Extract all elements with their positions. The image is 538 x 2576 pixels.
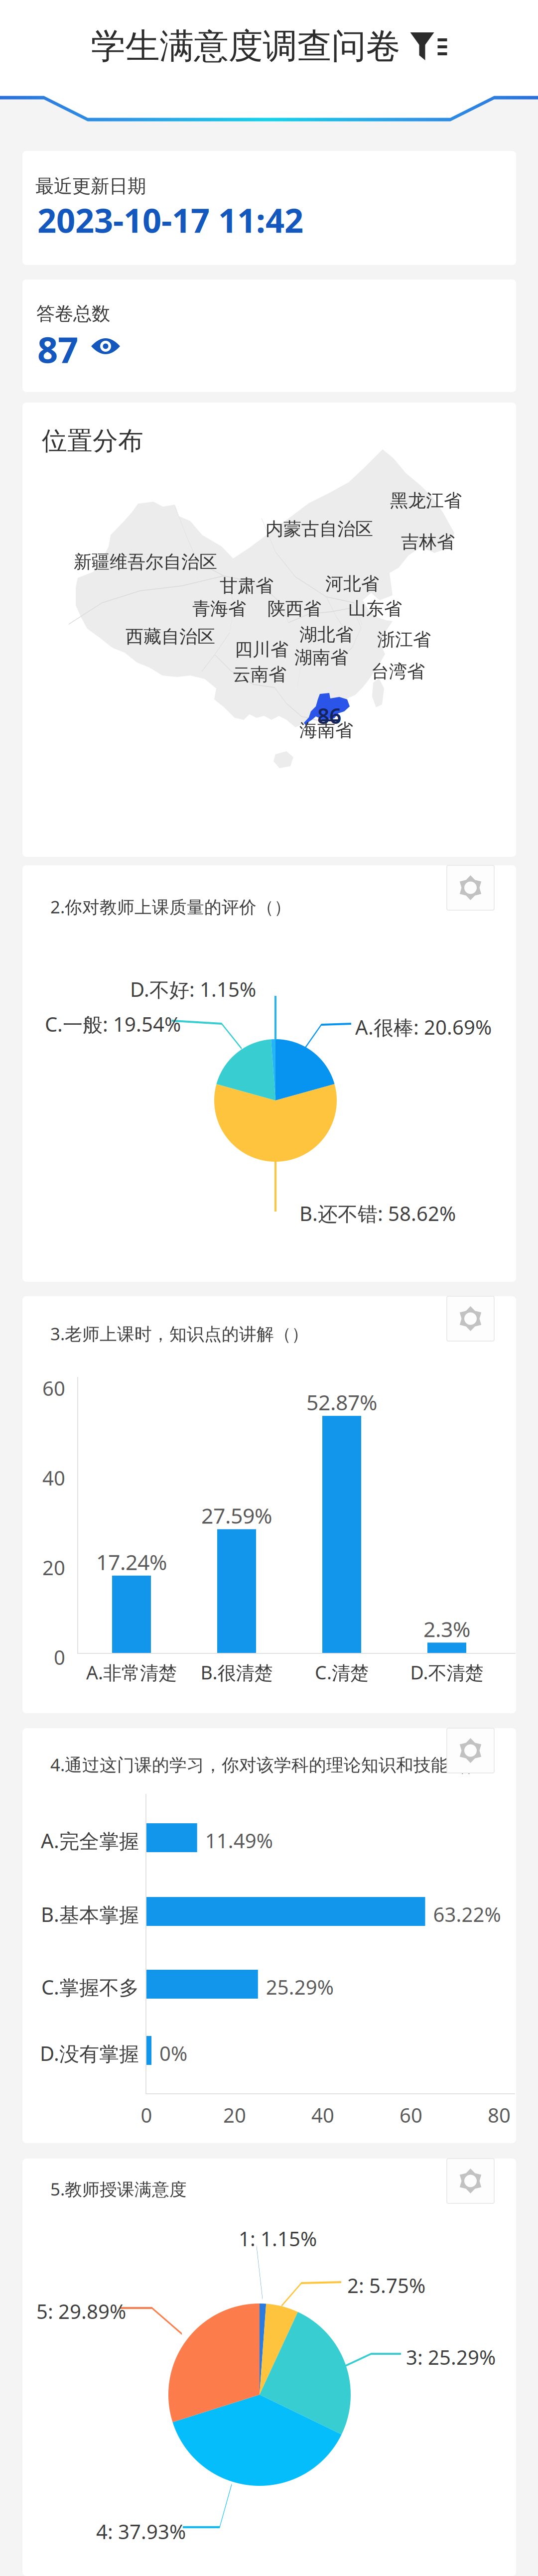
staticText: 0% bbox=[159, 2040, 187, 2066]
staticText: C.一般: 19.54% bbox=[45, 1011, 181, 1037]
staticText: A.完全掌握 bbox=[41, 1827, 139, 1854]
staticText: 湖南省 bbox=[294, 647, 348, 669]
staticText: D.不清楚 bbox=[410, 1660, 483, 1685]
staticText: 40 bbox=[311, 2102, 334, 2128]
staticText: C.清楚 bbox=[315, 1660, 369, 1685]
staticText: 87 bbox=[37, 325, 78, 373]
staticText: 位置分布 bbox=[42, 425, 143, 456]
staticText: 内蒙古自治区 bbox=[266, 518, 373, 540]
staticText: D.没有掌握 bbox=[40, 2040, 139, 2067]
staticText: 0 bbox=[54, 1644, 65, 1670]
staticText: B.基本掌握 bbox=[41, 1901, 139, 1928]
staticText: 海南省 bbox=[299, 719, 353, 741]
staticText: D.不好: 1.15% bbox=[130, 976, 256, 1002]
staticText: 2.你对教师上课质量的评价（） bbox=[50, 895, 291, 918]
staticText: 学生满意度调查问卷 bbox=[91, 25, 400, 68]
staticText: 河北省 bbox=[325, 573, 379, 595]
staticText: 3: 25.29% bbox=[406, 2344, 496, 2370]
button[interactable]: Chart options bbox=[447, 865, 494, 910]
staticText: 最近更新日期 bbox=[35, 175, 146, 198]
staticText: 5: 29.89% bbox=[36, 2298, 126, 2324]
staticText: 17.24% bbox=[96, 1548, 167, 1576]
staticText: 西藏自治区 bbox=[126, 626, 215, 648]
staticText: 黑龙江省 bbox=[390, 490, 462, 512]
staticText: 20 bbox=[42, 1554, 65, 1581]
button[interactable]: Filter bbox=[410, 31, 447, 61]
staticText: 1: 1.15% bbox=[239, 2225, 317, 2252]
staticText: 80 bbox=[488, 2102, 511, 2128]
staticText: 甘肃省 bbox=[220, 575, 273, 597]
staticText: 60 bbox=[42, 1375, 65, 1401]
staticText: C.掌握不多 bbox=[41, 1974, 139, 2000]
staticText: 四川省 bbox=[235, 639, 288, 661]
button[interactable]: Chart options bbox=[447, 1296, 494, 1341]
staticText: B.还不错: 58.62% bbox=[299, 1200, 456, 1227]
staticText: 27.59% bbox=[201, 1501, 272, 1530]
staticText: 湖北省 bbox=[299, 624, 353, 646]
staticText: A.非常清楚 bbox=[86, 1660, 177, 1685]
staticText: 浙江省 bbox=[377, 629, 431, 651]
button[interactable]: Chart options bbox=[447, 1728, 494, 1773]
staticText: 20 bbox=[223, 2102, 246, 2128]
staticText: 台湾省 bbox=[371, 661, 425, 683]
staticText: 4: 37.93% bbox=[96, 2518, 186, 2545]
staticText: 答卷总数 bbox=[36, 302, 110, 325]
staticText: 52.87% bbox=[306, 1388, 377, 1416]
staticText: 0 bbox=[141, 2102, 152, 2128]
button[interactable]: Chart options bbox=[447, 2159, 494, 2203]
staticText: 2023-10-17 11:42 bbox=[37, 198, 303, 242]
staticText: 新疆维吾尔自治区 bbox=[74, 551, 217, 573]
staticText: 4.通过这门课的学习，你对该学科的理论知识和技能（） bbox=[50, 1753, 483, 1776]
staticText: 5.教师授课满意度 bbox=[50, 2177, 187, 2200]
staticText: 青海省 bbox=[192, 598, 246, 620]
staticText: 11.49% bbox=[205, 1827, 273, 1854]
staticText: 陕西省 bbox=[268, 598, 321, 620]
staticText: 吉林省 bbox=[401, 531, 455, 553]
staticText: 40 bbox=[42, 1465, 65, 1491]
staticText: 25.29% bbox=[266, 1974, 334, 2000]
staticText: 63.22% bbox=[433, 1901, 501, 1927]
staticText: 3.老师上课时，知识点的讲解（） bbox=[50, 1322, 309, 1345]
staticText: 云南省 bbox=[233, 664, 286, 686]
staticText: B.很清楚 bbox=[201, 1660, 273, 1685]
staticText: 2: 5.75% bbox=[347, 2272, 425, 2299]
staticText: 2.3% bbox=[423, 1615, 470, 1643]
staticText: A.很棒: 20.69% bbox=[355, 1014, 492, 1040]
staticText: 60 bbox=[400, 2102, 422, 2128]
staticText: 山东省 bbox=[348, 598, 402, 620]
staticText: 86 bbox=[317, 701, 341, 730]
